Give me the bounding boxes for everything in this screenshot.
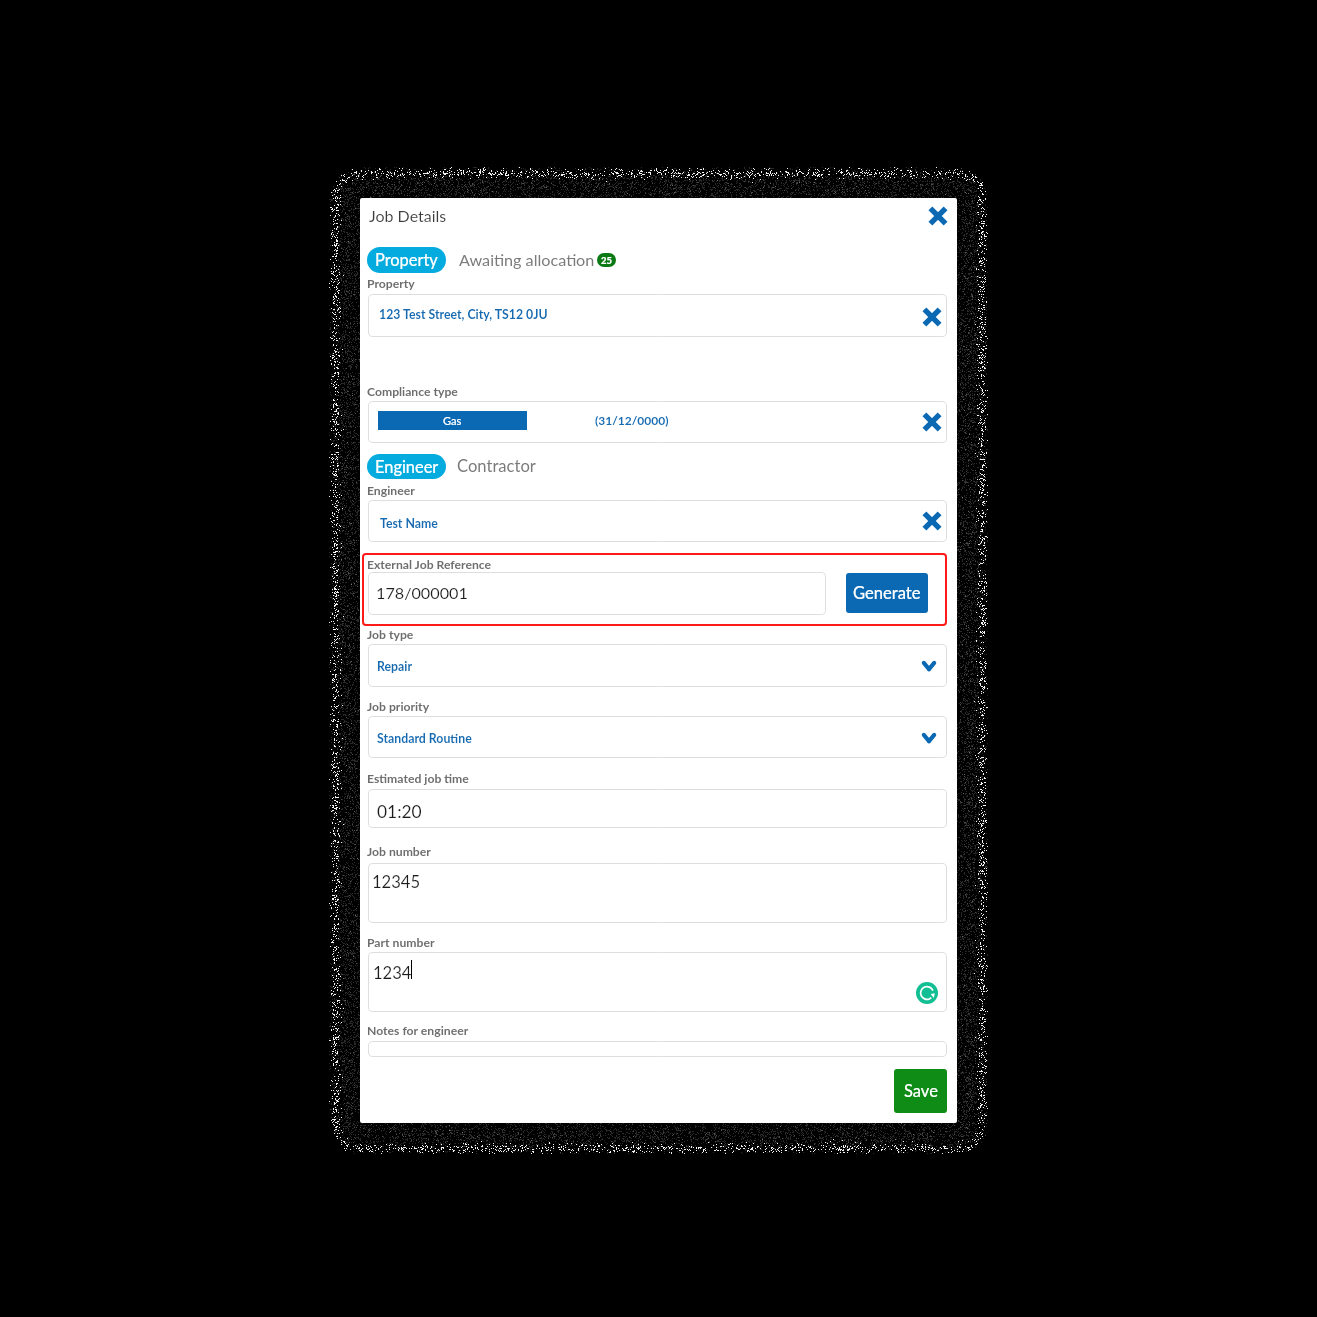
staticText: Job number: [367, 844, 431, 859]
staticText: 12345: [372, 872, 421, 892]
staticText: Repair: [377, 659, 412, 674]
staticText: Job Details: [369, 206, 447, 225]
staticText: Save: [904, 1081, 938, 1101]
staticText: Estimated job time: [367, 771, 469, 786]
staticText: 01:20: [377, 801, 422, 822]
staticText: 1234: [373, 963, 412, 983]
button[interactable]: Gas: [368, 401, 947, 443]
button[interactable]: 1234: [368, 952, 947, 1012]
staticText: Generate: [853, 583, 921, 603]
button[interactable]: Engineer: [367, 454, 446, 479]
staticText: 178/000001: [376, 583, 468, 602]
staticText: Notes for engineer: [367, 1023, 469, 1038]
staticText: Property: [367, 276, 415, 291]
button[interactable]: 178/000001: [368, 572, 826, 615]
staticText: Engineer: [375, 457, 439, 477]
button[interactable]: Generate: [846, 573, 928, 613]
button[interactable]: 123 Test Street, City, TS12 0JU: [368, 294, 947, 337]
button[interactable]: 01:20: [368, 789, 947, 828]
staticText: Gas: [443, 414, 462, 427]
button[interactable]: 12345: [368, 863, 947, 923]
button[interactable]: Contractor: [457, 454, 536, 478]
staticText: Job priority: [367, 699, 430, 714]
staticText: Job type: [367, 627, 414, 642]
button[interactable]: Gas: [378, 411, 527, 430]
staticText: Part number: [367, 935, 435, 950]
button[interactable]: Clear compliance type: [918, 408, 946, 436]
staticText: 25: [601, 255, 613, 266]
staticText: Contractor: [457, 456, 536, 476]
button[interactable]: Repair: [368, 644, 947, 687]
button[interactable]: Test Name: [368, 500, 947, 542]
staticText: Property: [375, 250, 438, 270]
button[interactable]: Clear engineer: [918, 507, 946, 535]
button[interactable]: Awaiting allocation: [459, 247, 616, 272]
staticText: Test Name: [380, 516, 438, 531]
staticText: External Job Reference: [367, 557, 492, 572]
button[interactable]: Close: [924, 202, 952, 230]
staticText: 123 Test Street, City, TS12 0JU: [379, 307, 548, 322]
button[interactable]: Standard Routine: [368, 716, 947, 758]
button[interactable]: Refresh part number: [916, 982, 938, 1004]
staticText: Standard Routine: [377, 731, 472, 746]
button[interactable]: Save: [894, 1069, 947, 1113]
staticText: Engineer: [367, 483, 415, 498]
staticText: (31/12/0000): [595, 413, 669, 427]
staticText: Awaiting allocation: [459, 250, 595, 269]
button[interactable]: Open job type dropdown: [916, 653, 942, 679]
staticText: Compliance type: [367, 384, 458, 399]
button[interactable]: Open job priority dropdown: [916, 725, 942, 751]
button[interactable]: Clear property: [918, 303, 946, 331]
button[interactable]: Property: [367, 247, 446, 273]
